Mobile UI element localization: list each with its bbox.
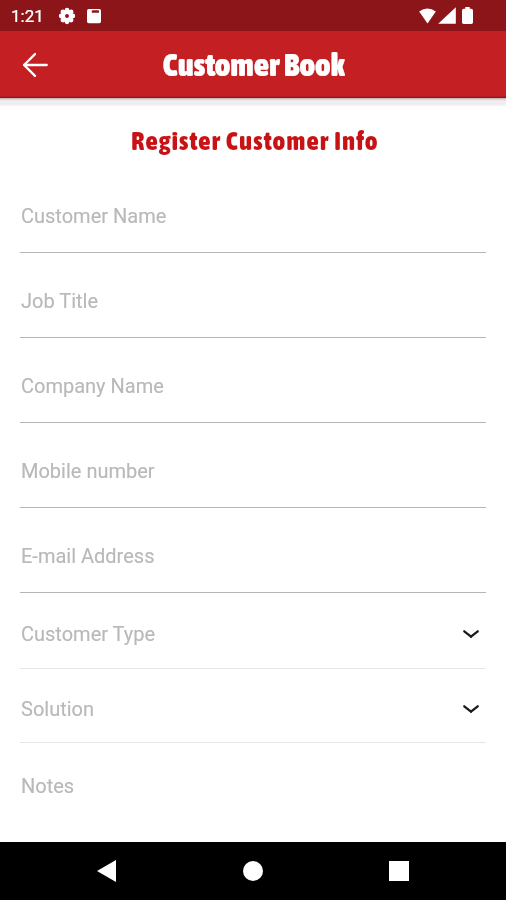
staticText: Customer Type (21, 622, 156, 645)
button[interactable]: Customer Name (0, 168, 506, 253)
button[interactable]: Mobile number (0, 423, 506, 508)
button[interactable]: Solution (0, 669, 506, 743)
button[interactable]: Company Name (0, 338, 506, 423)
button[interactable]: Back (12, 42, 58, 88)
staticText: Mobile number (21, 459, 155, 482)
button[interactable]: Back (80, 845, 132, 897)
button[interactable]: Recent apps (373, 845, 425, 897)
staticText: Customer Book (163, 46, 346, 83)
button[interactable]: Notes (0, 743, 506, 842)
staticText: E-mail Address (21, 544, 155, 567)
button[interactable]: Customer Type (0, 593, 506, 669)
staticText: Job Title (21, 289, 99, 312)
staticText: Register Customer Info (4, 126, 506, 156)
staticText: Customer Name (21, 204, 167, 227)
staticText: Solution (21, 697, 95, 720)
staticText: 1:21 (11, 6, 44, 26)
button[interactable]: Job Title (0, 253, 506, 338)
staticText: Notes (21, 774, 75, 797)
staticText: Company Name (21, 374, 164, 397)
button[interactable]: E-mail Address (0, 508, 506, 593)
button[interactable]: Home (227, 845, 279, 897)
